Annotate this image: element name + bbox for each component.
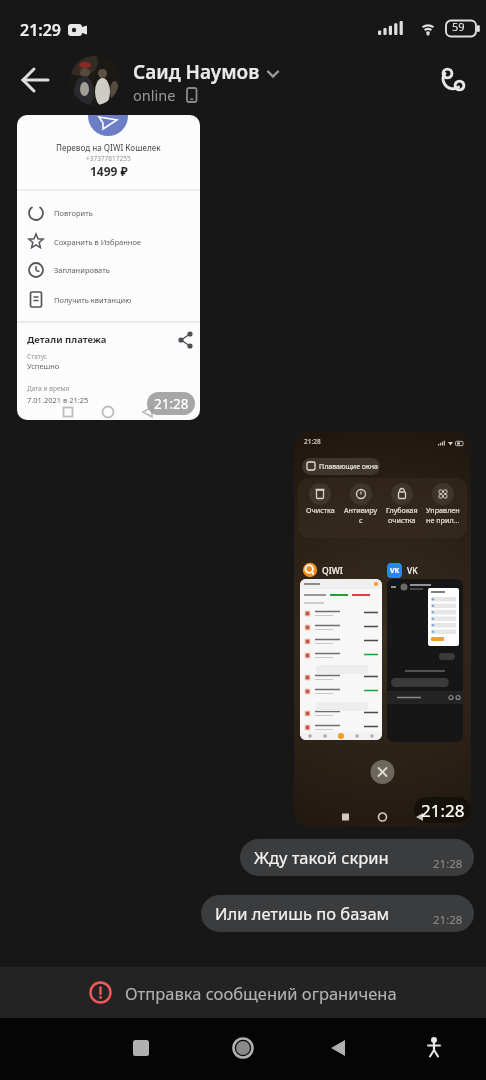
staticText: Или летишь по базам (215, 902, 390, 924)
staticText: Перевод на QIWI Кошелек (56, 142, 161, 153)
button[interactable] (414, 1028, 454, 1068)
staticText: Успешно (27, 361, 60, 371)
staticText: QIWI (322, 565, 343, 577)
staticText: +37377817255 (86, 154, 131, 163)
button[interactable] (121, 1028, 161, 1068)
button[interactable]: Жду такой скрин (240, 839, 474, 876)
staticText: online (133, 85, 176, 105)
button[interactable] (70, 56, 119, 105)
staticText: Очистка (306, 505, 335, 515)
staticText: Жду такой скрин (254, 846, 389, 868)
staticText: Дата и время (27, 384, 70, 393)
staticText: Получить квитанцию (54, 295, 132, 305)
staticText: Саид Наумов (133, 59, 260, 85)
staticText: Повторить (54, 208, 93, 218)
button[interactable] (133, 58, 293, 102)
staticText: 21:28 (304, 437, 321, 446)
button[interactable] (223, 1028, 263, 1068)
staticText: Плавающие окна (319, 462, 378, 472)
staticText: VK (407, 565, 418, 577)
staticText: Статус (27, 352, 48, 361)
button[interactable]: 21:28 (294, 432, 471, 827)
staticText: VK (390, 566, 400, 576)
staticText: Детали платежа (27, 333, 107, 346)
staticText: 21:28 (421, 799, 465, 822)
staticText: 7.01.2021 в 21:25 (27, 395, 89, 405)
staticText: 21:28 (433, 912, 463, 928)
staticText: 1499 ₽ (90, 163, 128, 179)
staticText: не прил... (426, 515, 460, 525)
staticText: Глубокая (386, 505, 418, 515)
staticText: Антивиру (344, 505, 378, 515)
staticText: Запланировать (54, 265, 110, 275)
staticText: 21:29 (20, 19, 62, 41)
button[interactable] (318, 1028, 358, 1068)
staticText: 21:28 (433, 856, 463, 872)
staticText: 21:28 (154, 395, 189, 413)
staticText: 59 (452, 19, 465, 34)
staticText: с (359, 515, 363, 525)
staticText: Управлен (426, 505, 460, 515)
staticText: очистка (388, 515, 416, 525)
staticText: Сохранить в Избранное (54, 237, 141, 247)
button[interactable]: Или летишь по базам (201, 895, 474, 932)
button[interactable] (437, 63, 471, 97)
button[interactable]: Перевод на QIWI Кошелек (17, 115, 200, 420)
button[interactable] (21, 66, 51, 94)
staticText: Отправка сообщений ограничена (125, 982, 397, 1004)
